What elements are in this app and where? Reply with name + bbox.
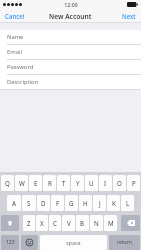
button[interactable]: D: [37, 195, 50, 211]
staticText: U: [89, 179, 94, 187]
staticText: Next: [122, 12, 136, 20]
staticText: M: [108, 219, 114, 227]
button[interactable]: Email: [0, 45, 141, 60]
button[interactable]: Backspace: [121, 215, 140, 231]
button[interactable]: Y: [71, 175, 84, 191]
staticText: Name: [7, 33, 24, 41]
staticText: S: [27, 199, 31, 207]
button[interactable]: W: [15, 175, 28, 191]
button[interactable]: Z: [23, 215, 35, 231]
staticText: G: [69, 199, 74, 207]
staticText: D: [41, 199, 46, 207]
button[interactable]: V: [62, 215, 75, 231]
button[interactable]: P: [127, 175, 140, 191]
staticText: I: [104, 179, 107, 187]
button[interactable]: B: [76, 215, 89, 231]
staticText: H: [83, 199, 88, 207]
button[interactable]: C: [49, 215, 61, 231]
button[interactable]: Shift: [1, 215, 19, 231]
button[interactable]: Next: [117, 10, 141, 22]
button[interactable]: K: [107, 195, 120, 211]
staticText: T: [62, 179, 66, 187]
staticText: Description: [7, 78, 39, 86]
button[interactable]: T: [57, 175, 70, 191]
staticText: New Account: [49, 12, 92, 21]
button[interactable]: Cancel: [0, 10, 30, 22]
button[interactable]: O: [113, 175, 126, 191]
staticText: Y: [76, 179, 80, 187]
button[interactable]: S: [22, 195, 36, 211]
button[interactable]: I: [99, 175, 112, 191]
staticText: R: [48, 179, 52, 187]
staticText: Cancel: [5, 12, 25, 20]
staticText: return: [117, 239, 132, 246]
button[interactable]: 123: [1, 235, 19, 250]
staticText: Email: [7, 48, 22, 56]
staticText: space: [66, 239, 81, 246]
button[interactable]: return: [109, 235, 140, 250]
staticText: L: [126, 199, 130, 207]
button[interactable]: H: [79, 195, 92, 211]
button[interactable]: R: [43, 175, 56, 191]
staticText: 123: [6, 239, 15, 246]
staticText: N: [94, 219, 99, 227]
button[interactable]: space: [40, 235, 107, 250]
button[interactable]: U: [85, 175, 98, 191]
button[interactable]: Description: [0, 75, 141, 90]
staticText: W: [19, 179, 25, 187]
button[interactable]: L: [121, 195, 134, 211]
staticText: Z: [27, 219, 31, 227]
button[interactable]: Password: [0, 60, 141, 75]
button[interactable]: M: [104, 215, 117, 231]
staticText: Q: [5, 179, 10, 187]
button[interactable]: Name: [0, 30, 141, 45]
staticText: K: [112, 199, 116, 207]
staticText: V: [67, 219, 71, 227]
button[interactable]: N: [90, 215, 103, 231]
staticText: P: [132, 179, 136, 187]
button[interactable]: A: [7, 195, 21, 211]
staticText: F: [56, 199, 60, 207]
button[interactable]: F: [51, 195, 64, 211]
staticText: O: [117, 179, 122, 187]
button[interactable]: Emoji: [21, 235, 38, 250]
staticText: X: [40, 219, 44, 227]
button[interactable]: G: [65, 195, 78, 211]
staticText: Password: [7, 63, 34, 71]
staticText: C: [53, 219, 57, 227]
staticText: J: [99, 199, 101, 207]
staticText: E: [34, 179, 38, 187]
button[interactable]: J: [93, 195, 106, 211]
staticText: 12:00: [64, 1, 78, 8]
button[interactable]: E: [29, 175, 42, 191]
button[interactable]: X: [36, 215, 48, 231]
button[interactable]: Q: [1, 175, 14, 191]
staticText: A: [12, 199, 16, 207]
staticText: B: [80, 219, 85, 227]
